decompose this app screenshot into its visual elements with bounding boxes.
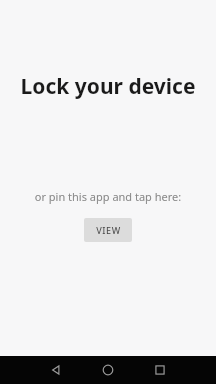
button[interactable]: Back [30,356,82,384]
button[interactable]: VIEW [84,218,132,242]
staticText: Lock your device [0,72,216,101]
staticText: or pin this app and tap here: [0,189,216,204]
button[interactable]: Recent apps [134,356,186,384]
staticText: VIEW [96,224,121,236]
button[interactable]: Home [82,356,134,384]
